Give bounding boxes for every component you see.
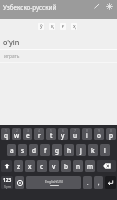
button[interactable]: h	[64, 144, 74, 156]
staticText: 7	[74, 128, 76, 133]
button[interactable]: Favorite	[103, 0, 115, 12]
staticText: 2	[16, 128, 18, 133]
button[interactable]: l	[100, 144, 110, 156]
staticText: 123	[3, 177, 12, 184]
staticText: v	[52, 162, 56, 171]
button[interactable]: 9	[94, 128, 104, 140]
button[interactable]	[1, 160, 12, 172]
staticText: w	[14, 131, 20, 140]
staticText: l	[104, 146, 106, 155]
staticText: қ	[51, 23, 54, 30]
staticText: n	[76, 162, 81, 171]
button[interactable]: 6	[58, 128, 68, 140]
button[interactable]: 0	[106, 128, 116, 140]
staticText: x	[28, 162, 32, 171]
staticText: m	[87, 162, 94, 171]
staticText: 6	[62, 128, 64, 133]
button[interactable]: 7	[70, 128, 80, 140]
button[interactable]: f	[40, 144, 50, 156]
button[interactable]: b	[61, 160, 71, 172]
staticText: i	[86, 131, 88, 140]
button[interactable]: ҳ	[71, 23, 77, 30]
staticText: e	[26, 131, 30, 140]
button[interactable]: 2	[12, 128, 21, 140]
staticText: b	[64, 162, 68, 171]
button[interactable]	[97, 160, 116, 172]
button[interactable]: a	[7, 144, 16, 156]
staticText: g	[55, 146, 59, 155]
button[interactable]: English(US)	[26, 176, 81, 189]
button[interactable]: 123	[1, 176, 13, 189]
staticText: z	[17, 162, 21, 171]
button[interactable]: d	[29, 144, 38, 156]
staticText: f	[44, 146, 47, 155]
button[interactable]: ў	[38, 23, 44, 30]
staticText: 1	[5, 128, 7, 133]
button[interactable]: x	[25, 160, 35, 172]
button[interactable]: Edit	[91, 0, 103, 12]
button[interactable]: m	[85, 160, 95, 172]
button[interactable]: 5	[46, 128, 56, 140]
staticText: 9	[98, 128, 100, 133]
button[interactable]: j	[76, 144, 86, 156]
button[interactable]: .	[83, 176, 92, 189]
staticText: Sym	[4, 184, 12, 189]
staticText: q	[4, 131, 8, 140]
staticText: .	[87, 179, 89, 186]
staticText: s	[21, 146, 25, 155]
button[interactable]: k	[88, 144, 98, 156]
staticText: ғ	[62, 23, 65, 30]
staticText: 8	[86, 128, 88, 133]
staticText: k	[91, 146, 95, 155]
staticText: English(US)	[45, 179, 63, 184]
staticText: 3	[27, 128, 29, 133]
button[interactable]	[105, 176, 116, 189]
button[interactable]: қ	[49, 23, 55, 30]
staticText: j	[80, 146, 82, 155]
staticText: ҳ	[73, 23, 76, 30]
staticText: d	[32, 146, 36, 155]
button[interactable]: 3	[23, 128, 32, 140]
button[interactable]: g	[52, 144, 62, 156]
button[interactable]: v	[49, 160, 59, 172]
button[interactable]: 8	[82, 128, 92, 140]
staticText: r	[38, 131, 41, 140]
staticText: 5	[50, 128, 52, 133]
staticText: Узбекско-русский	[3, 3, 57, 12]
staticText: играть	[4, 53, 20, 60]
staticText: u	[73, 131, 78, 140]
staticText: y	[61, 131, 65, 140]
staticText: 0	[110, 128, 112, 133]
staticText: a	[10, 146, 14, 155]
staticText: p	[109, 131, 113, 140]
button[interactable]: z	[14, 160, 23, 172]
staticText: c	[40, 162, 44, 171]
staticText: o	[97, 131, 101, 140]
button[interactable]: 1	[1, 128, 10, 140]
button[interactable]: 4	[34, 128, 44, 140]
staticText: o'yin	[3, 37, 20, 47]
staticText: t	[50, 131, 53, 140]
staticText: 4	[38, 128, 40, 133]
staticText: ,	[98, 179, 100, 186]
button[interactable]	[15, 176, 24, 189]
button[interactable]: ғ	[60, 23, 66, 30]
button[interactable]: n	[73, 160, 83, 172]
button[interactable]: s	[18, 144, 27, 156]
staticText: h	[67, 146, 72, 155]
staticText: ў	[40, 23, 43, 30]
button[interactable]: ,	[94, 176, 103, 189]
button[interactable]: c	[37, 160, 47, 172]
